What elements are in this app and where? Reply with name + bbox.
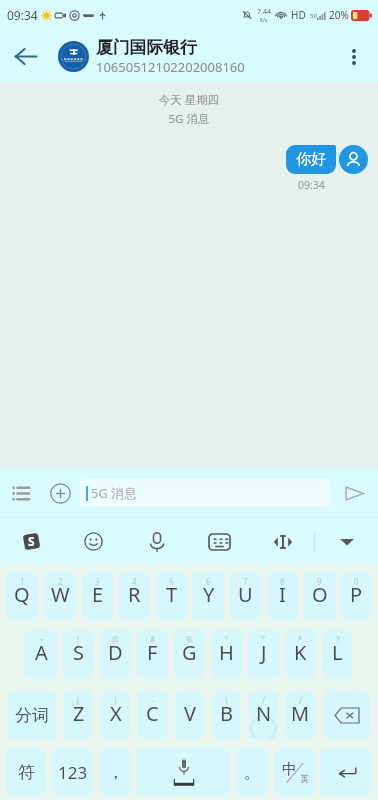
staticText: G	[182, 639, 197, 666]
button[interactable]: 分词	[8, 691, 56, 739]
button[interactable]: ~	[25, 630, 57, 678]
button[interactable]: -	[138, 691, 167, 739]
button[interactable]: 5G 消息	[80, 479, 330, 507]
staticText: 4	[132, 576, 137, 587]
button[interactable]: 符	[6, 748, 46, 796]
staticText: L	[332, 639, 343, 666]
button[interactable]: @	[100, 630, 131, 678]
button[interactable]: 9	[304, 572, 335, 620]
staticText: 9	[317, 576, 322, 587]
staticText: _	[188, 695, 192, 706]
staticText: R	[128, 581, 141, 608]
staticText: Z	[73, 700, 85, 727]
staticText: #	[150, 634, 156, 645]
button[interactable]: 你好	[286, 145, 336, 174]
button[interactable]: 中	[274, 748, 315, 796]
staticText: ”	[262, 634, 265, 645]
staticText: P	[350, 581, 363, 608]
staticText: HD	[291, 8, 306, 22]
button[interactable]: )	[101, 691, 130, 739]
button[interactable]: Sender avatar	[339, 145, 368, 174]
staticText: A	[35, 639, 48, 666]
staticText: 你好	[296, 150, 326, 169]
button[interactable]: #	[137, 630, 168, 678]
button[interactable]: 。	[236, 748, 268, 796]
button[interactable]: Hide keyboard	[315, 518, 378, 565]
button[interactable]: 7	[230, 572, 261, 620]
button[interactable]: 2	[44, 572, 76, 620]
button[interactable]	[323, 691, 370, 739]
staticText: 符	[18, 762, 35, 783]
staticText: E	[92, 581, 104, 608]
button[interactable]: /	[249, 691, 278, 739]
button[interactable]: ?	[322, 630, 353, 678]
button[interactable]: Back	[0, 30, 58, 83]
staticText: D	[108, 639, 123, 666]
staticText: Y	[203, 581, 215, 608]
button[interactable]: Input method	[0, 518, 62, 565]
button[interactable]: 6	[193, 572, 224, 620]
staticText: C	[146, 700, 159, 727]
button[interactable]: _	[175, 691, 204, 739]
button[interactable]: Move cursor	[251, 518, 314, 565]
button[interactable]: 0	[341, 572, 372, 620]
button[interactable]: (	[64, 691, 93, 739]
staticText: 09:34	[7, 7, 38, 23]
button[interactable]: Keyboard layout	[188, 518, 251, 565]
staticText: 09:34	[298, 178, 325, 192]
staticText: ~	[39, 634, 44, 645]
button[interactable]: Send	[330, 469, 378, 517]
button[interactable]: 4	[119, 572, 150, 620]
staticText: Q	[14, 581, 30, 608]
button[interactable]: Menu	[0, 473, 40, 513]
staticText: 8	[280, 576, 285, 587]
staticText: 3	[95, 576, 100, 587]
staticText: \	[225, 695, 228, 706]
button[interactable]: “	[211, 630, 242, 678]
staticText: N	[256, 700, 272, 727]
staticText: 今天 星期四	[0, 92, 378, 108]
staticText: I	[279, 581, 286, 608]
button[interactable]: 5	[156, 572, 187, 620]
button[interactable]: Voice input	[125, 518, 188, 565]
staticText: M	[291, 700, 310, 727]
button[interactable]: ”	[248, 630, 279, 678]
button[interactable]: /	[286, 691, 315, 739]
button[interactable]: More options	[330, 33, 378, 81]
staticText: K	[294, 639, 307, 666]
staticText: S	[73, 639, 84, 666]
staticText: 5G 消息	[91, 484, 138, 502]
button[interactable]: 1	[6, 572, 38, 620]
staticText: 123	[58, 761, 88, 784]
button[interactable]	[137, 748, 230, 796]
button[interactable]: Contact avatar	[58, 41, 89, 72]
staticText: 5G 消息	[0, 111, 378, 127]
staticText: J	[261, 639, 267, 666]
button[interactable]	[321, 748, 372, 796]
staticText: 厦门国际银行	[96, 37, 197, 58]
staticText: -	[151, 695, 154, 706]
staticText: U	[238, 581, 253, 608]
button[interactable]: %	[174, 630, 205, 678]
staticText: 分词	[15, 705, 49, 726]
button[interactable]: 8	[267, 572, 298, 620]
staticText: K/s	[260, 17, 268, 24]
staticText: 50	[310, 12, 317, 20]
button[interactable]: Emoji	[62, 518, 125, 565]
button[interactable]: 3	[82, 572, 113, 620]
staticText: 10650512102202008160	[96, 58, 245, 76]
button[interactable]: !	[63, 630, 94, 678]
staticText: B	[220, 700, 233, 727]
staticText: H	[219, 639, 234, 666]
button[interactable]: \	[212, 691, 241, 739]
staticText: 中	[282, 760, 297, 779]
staticText: 5	[169, 576, 174, 587]
button[interactable]: Add attachment	[40, 473, 80, 513]
button[interactable]: ，	[99, 748, 131, 796]
staticText: “	[225, 634, 228, 645]
button[interactable]: 123	[52, 748, 93, 796]
staticText: ?	[336, 634, 340, 645]
button[interactable]: *	[285, 630, 316, 678]
staticText: (	[77, 695, 80, 706]
staticText: 7.44	[257, 7, 271, 17]
